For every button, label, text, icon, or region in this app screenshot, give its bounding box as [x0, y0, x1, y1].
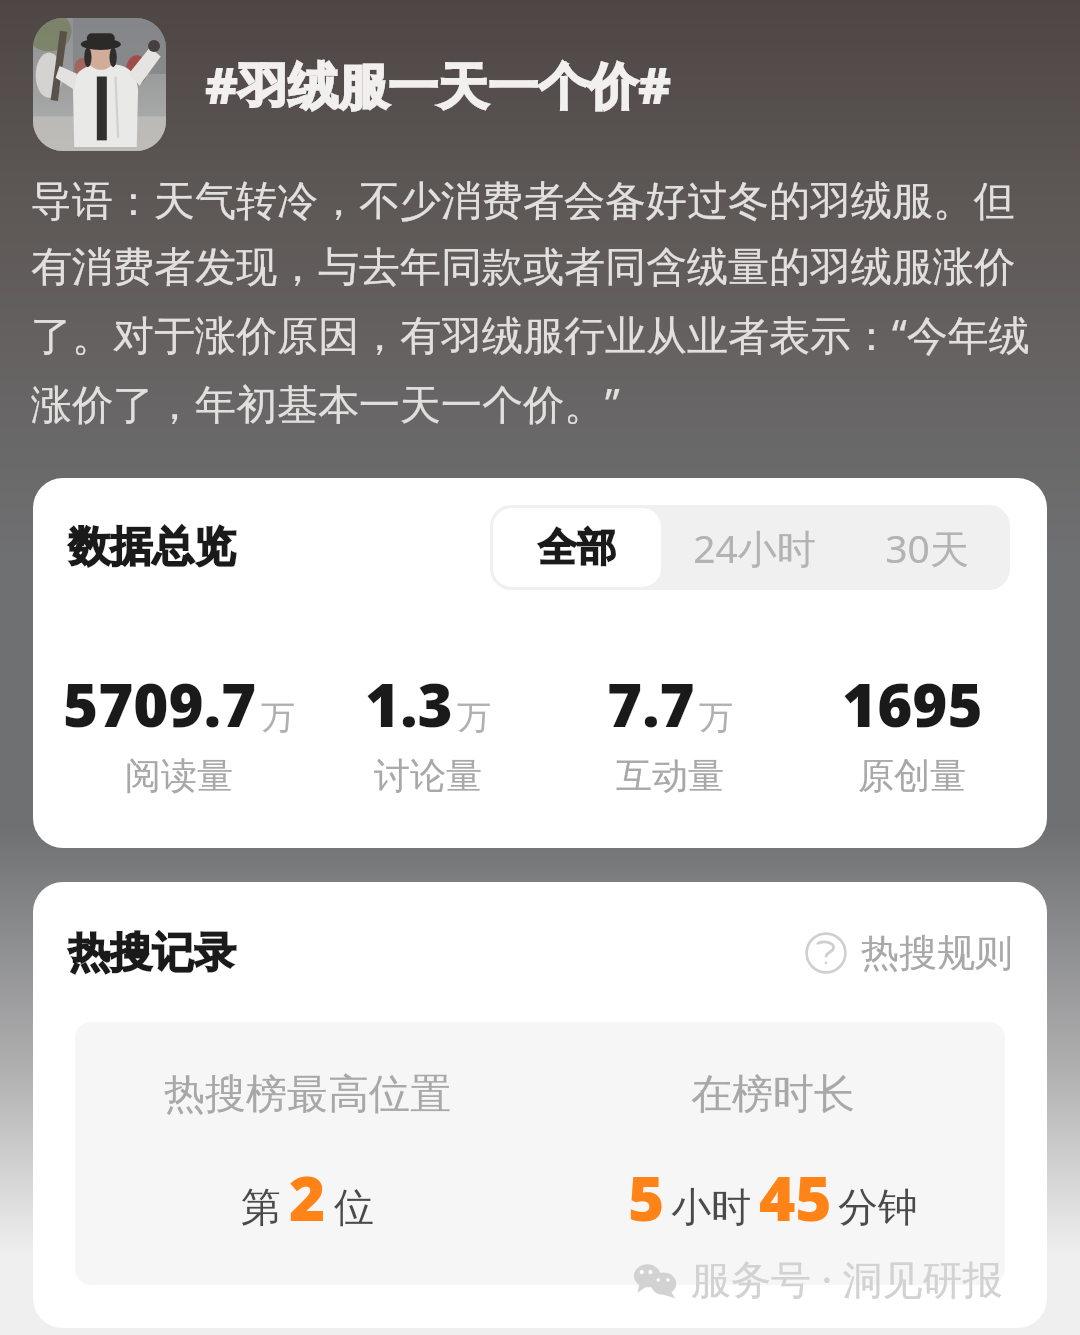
button[interactable]: 话题头像 [33, 18, 166, 151]
staticText: 2 [289, 1155, 326, 1239]
staticText: 数据总览 [68, 521, 236, 574]
staticText: 阅读量 [125, 753, 233, 798]
button[interactable]: 1695 [791, 663, 1033, 798]
staticText: 服务号 · 洞见研报 [691, 1251, 1003, 1306]
staticText: 原创量 [858, 753, 966, 798]
staticText: 万 [699, 696, 733, 739]
button[interactable]: 话题头像 [33, 18, 1080, 151]
staticText: 分钟 [838, 1182, 918, 1232]
staticText: 万 [261, 696, 295, 739]
staticText: 第 [241, 1182, 281, 1232]
staticText: 热搜规则 [861, 929, 1013, 977]
staticText: 万 [457, 696, 491, 739]
staticText: 全部 [538, 523, 616, 572]
button[interactable]: 5709.7 [51, 663, 307, 798]
staticText: 7.7 [607, 663, 695, 745]
button[interactable]: 全部 [493, 508, 661, 587]
staticText: 24小时 [693, 521, 816, 574]
staticText: 热搜榜最高位置 [164, 1069, 451, 1121]
staticText: 导语：天气转冷，不少消费者会备好过冬的羽绒服。但有消费者发现，与去年同款或者同含… [31, 176, 1031, 431]
button[interactable]: 1.3 [307, 663, 549, 798]
button[interactable]: 7.7 [549, 663, 791, 798]
staticText: 5709.7 [63, 663, 257, 745]
staticText: 讨论量 [374, 753, 482, 798]
staticText: 45 [759, 1155, 832, 1239]
staticText: 1695 [842, 663, 983, 745]
staticText: 热搜记录 [68, 927, 236, 980]
button[interactable]: 热搜榜最高位置 [75, 1022, 540, 1285]
staticText: 5 [628, 1155, 665, 1239]
button[interactable]: 24小时 [667, 508, 841, 587]
button[interactable]: 30天 [847, 508, 1007, 587]
staticText: 小时 [671, 1182, 751, 1232]
staticText: 在榜时长 [691, 1069, 855, 1121]
staticText: 30天 [885, 521, 969, 574]
other: 热搜规则说明 [805, 932, 847, 974]
staticText: 1.3 [365, 663, 453, 745]
staticText: 位 [334, 1182, 374, 1232]
button[interactable]: 在榜时长 [540, 1022, 1005, 1285]
staticText: #羽绒服一天一个价# [205, 51, 672, 119]
button[interactable]: 热搜规则说明 [805, 914, 1013, 992]
staticText: 互动量 [616, 753, 724, 798]
